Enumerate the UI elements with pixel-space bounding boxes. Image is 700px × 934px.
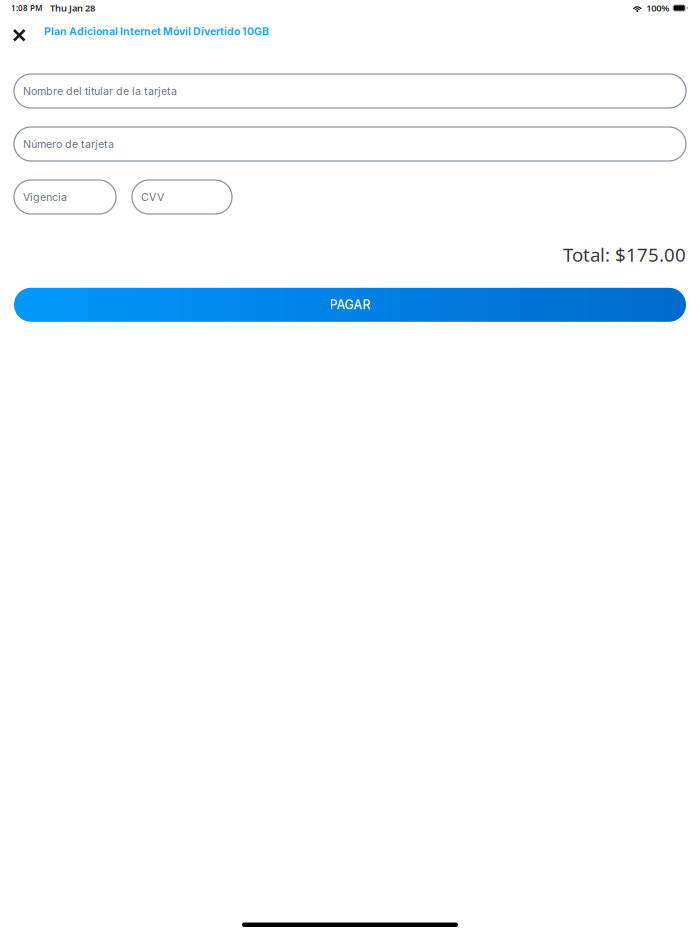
staticText: Número de tarjeta (23, 137, 114, 150)
button[interactable]: Close (14, 24, 44, 46)
staticText: Nombre del titular de la tarjeta (23, 84, 177, 97)
staticText: PAGAR (329, 297, 370, 312)
staticText: 1:08 PM (11, 3, 42, 13)
button[interactable]: Vigencia (14, 180, 116, 214)
staticText: Vigencia (23, 190, 67, 203)
button[interactable]: Número de tarjeta (14, 127, 686, 161)
button[interactable]: CVV (132, 180, 232, 214)
staticText: Plan Adicional Internet Móvil Divertido … (44, 25, 269, 38)
staticText: Thu Jan 28 (50, 2, 95, 14)
staticText: Total: $175.00 (563, 242, 686, 267)
button[interactable]: Nombre del titular de la tarjeta (14, 74, 686, 108)
staticText: 100% (646, 2, 669, 14)
button[interactable]: PAGAR (14, 288, 686, 322)
staticText: CVV (141, 190, 164, 203)
